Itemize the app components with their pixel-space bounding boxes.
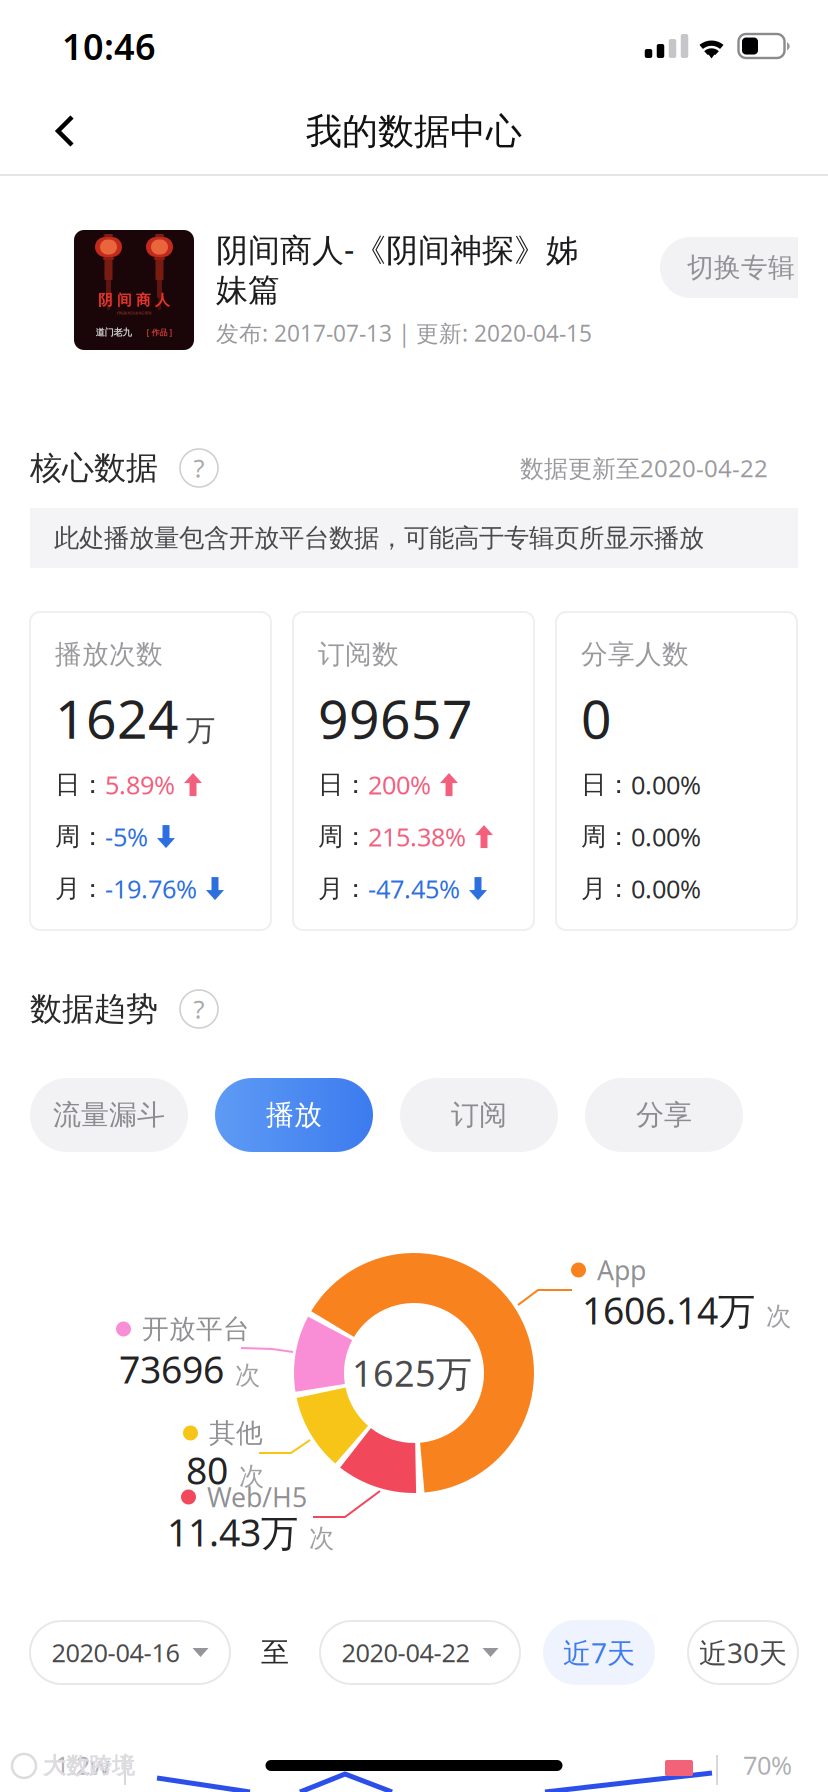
staticText: 阴间商人-《阴间神探》姊妹篇: [216, 228, 578, 310]
button[interactable]: 2020-04-16: [30, 1621, 230, 1684]
staticText: 0.00%: [631, 872, 701, 905]
button[interactable]: 近7天: [544, 1621, 654, 1684]
staticText: 周：: [581, 821, 631, 852]
staticText: -19.76%: [105, 872, 197, 905]
button[interactable]: 流量漏斗: [30, 1078, 188, 1152]
button[interactable]: Help: [180, 449, 218, 487]
staticText: 订阅数: [318, 638, 399, 671]
staticText: 阴 间 商 人: [98, 291, 170, 309]
staticText: App: [597, 1252, 646, 1288]
staticText: 日：: [318, 769, 368, 800]
staticText: Web/H5: [207, 1479, 307, 1515]
staticText: 0.00%: [631, 820, 701, 853]
button[interactable]: 切换专辑: [660, 237, 828, 298]
staticText: 200%: [368, 768, 431, 801]
staticText: 215.38%: [368, 820, 466, 853]
staticText: 大数跨境: [43, 1752, 135, 1780]
staticText: 数据趋势: [30, 989, 158, 1029]
staticText: 月：: [581, 873, 631, 904]
staticText: 播放: [266, 1098, 322, 1132]
staticText: 次: [766, 1301, 791, 1332]
staticText: 开放平台: [142, 1313, 250, 1345]
button[interactable]: 近30天: [688, 1621, 798, 1684]
staticText: [ 作品 ]: [146, 327, 172, 338]
staticText: 道门老九: [95, 326, 131, 338]
staticText: 月：: [55, 873, 105, 904]
staticText: 数据更新至2020-04-22: [520, 452, 768, 484]
staticText: 2020-04-16: [51, 1636, 179, 1669]
button[interactable]: 订阅: [400, 1078, 558, 1152]
staticText: 次: [309, 1523, 334, 1554]
staticText: 分享: [636, 1098, 692, 1132]
button[interactable]: Help: [180, 990, 218, 1028]
staticText: 流量漏斗: [53, 1098, 165, 1132]
staticText: 近7天: [563, 1634, 635, 1671]
staticText: ?: [193, 992, 204, 1026]
staticText: 1625万: [352, 1349, 472, 1397]
staticText: 99657: [318, 683, 473, 754]
staticText: 1.2w: [55, 1748, 110, 1782]
staticText: 10:46: [62, 22, 156, 70]
staticText: 2020-04-22: [341, 1636, 469, 1669]
button[interactable]: Back: [0, 88, 106, 174]
staticText: 发布: 2017-07-13 | 更新: 2020-04-15: [216, 318, 592, 348]
staticText: -5%: [105, 820, 148, 853]
button[interactable]: 2020-04-22: [320, 1621, 520, 1684]
staticText: 80: [186, 1445, 228, 1495]
staticText: 周：: [318, 821, 368, 852]
staticText: 73696: [119, 1344, 224, 1394]
staticText: 我的数据中心: [306, 109, 522, 154]
staticText: 此处播放量包含开放平台数据，可能高于专辑页所显示播放: [54, 522, 704, 553]
staticText: 月：: [318, 873, 368, 904]
button[interactable]: 播放: [215, 1078, 373, 1152]
staticText: 切换专辑: [687, 251, 795, 284]
staticText: 其他: [209, 1417, 263, 1449]
staticText: 1606.14万: [582, 1285, 755, 1335]
staticText: 万: [186, 712, 215, 748]
staticText: 次: [239, 1461, 264, 1492]
staticText: 11.43万: [167, 1507, 298, 1557]
staticText: 分享人数: [581, 638, 689, 671]
staticText: 0.00%: [631, 768, 701, 801]
staticText: 1624: [55, 683, 179, 754]
staticText: 次: [235, 1360, 260, 1391]
staticText: 日：: [581, 769, 631, 800]
staticText: 周：: [55, 821, 105, 852]
staticText: 近30天: [699, 1634, 787, 1671]
staticText: ?: [193, 451, 204, 485]
staticText: 核心数据: [30, 448, 158, 488]
staticText: YINJIANSHANGREN: [116, 310, 151, 315]
staticText: 0: [581, 683, 612, 754]
button[interactable]: 分享: [585, 1078, 743, 1152]
staticText: 播放次数: [55, 638, 163, 671]
staticText: 日：: [55, 769, 105, 800]
staticText: 订阅: [451, 1098, 507, 1132]
staticText: 至: [261, 1635, 289, 1670]
staticText: 5.89%: [105, 768, 175, 801]
staticText: 70%: [743, 1748, 792, 1782]
staticText: -47.45%: [368, 872, 460, 905]
